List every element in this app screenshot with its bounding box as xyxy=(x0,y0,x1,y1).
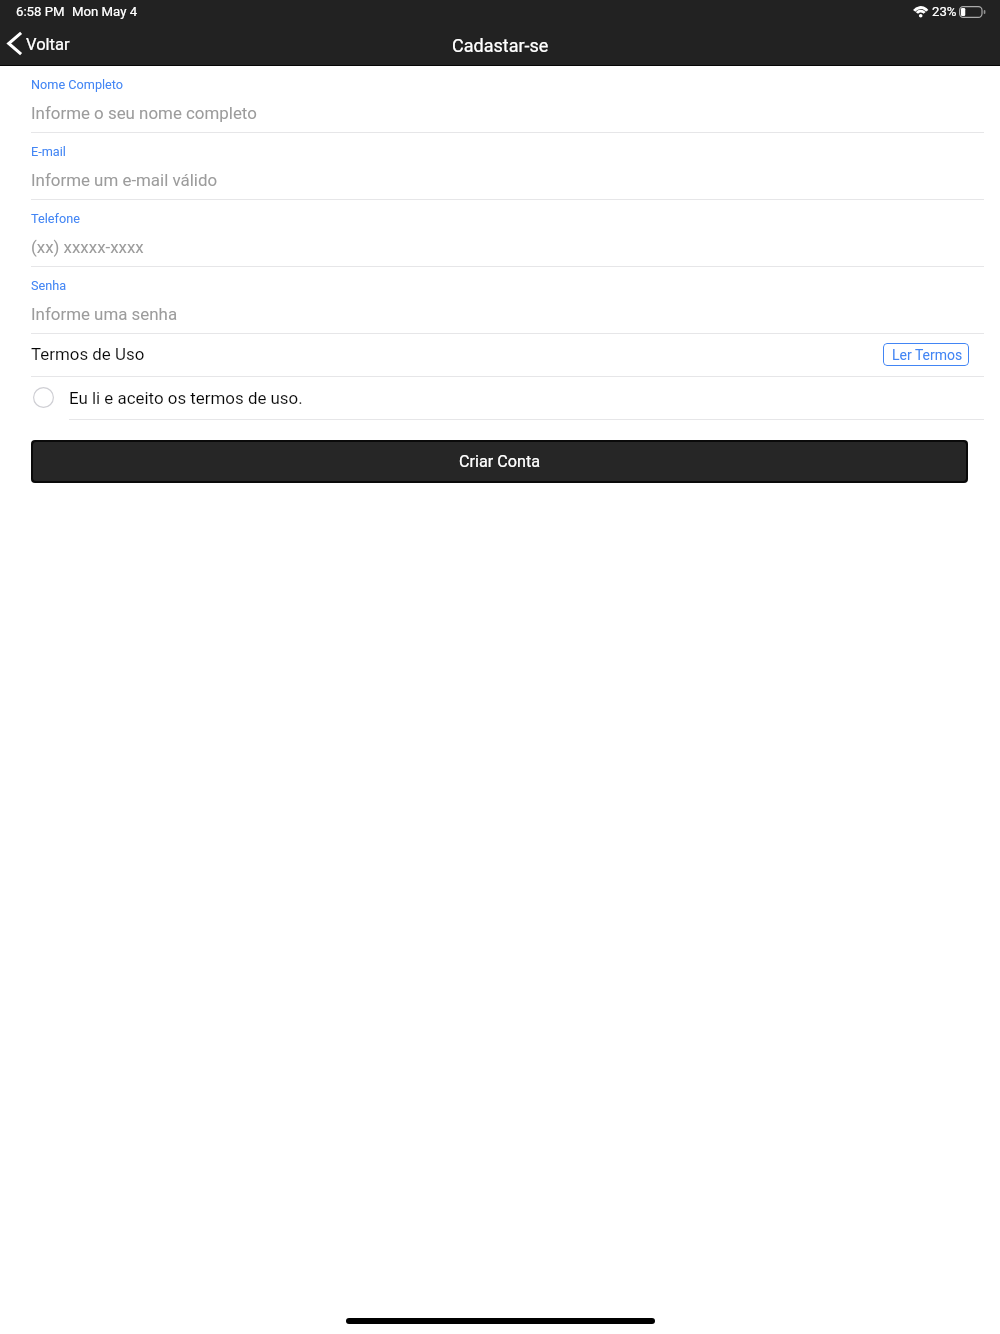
staticText: Ler Termos xyxy=(892,347,963,363)
staticText: Mon May 4 xyxy=(72,4,138,19)
staticText: Telefone xyxy=(31,211,80,226)
button[interactable]: Criar Conta xyxy=(33,442,966,481)
staticText: Termos de Uso xyxy=(31,344,145,364)
staticText: 23% xyxy=(932,4,957,19)
staticText: Informe o seu nome completo xyxy=(31,103,257,123)
button[interactable]: Aceitar os termos de uso xyxy=(33,387,54,408)
staticText: Nome Completo xyxy=(31,77,124,92)
staticText: Cadastar-se xyxy=(452,35,549,56)
staticText: (xx) xxxxx-xxxx xyxy=(31,237,144,257)
button[interactable]: Ler Termos xyxy=(883,343,969,366)
staticText: 6:58 PM xyxy=(16,4,65,19)
staticText: E-mail xyxy=(31,144,66,159)
staticText: Voltar xyxy=(26,35,70,54)
staticText: Criar Conta xyxy=(459,452,541,471)
staticText: Senha xyxy=(31,278,67,293)
staticText: Informe uma senha xyxy=(31,304,178,324)
staticText: Informe um e-mail válido xyxy=(31,170,218,190)
staticText: Eu li e aceito os termos de uso. xyxy=(69,388,303,408)
button[interactable]: Voltar xyxy=(0,27,79,60)
